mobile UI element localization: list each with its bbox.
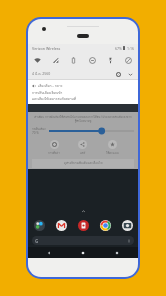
- button[interactable]: ให้คะแนน: [103, 139, 122, 157]
- staticText: 70 %: [32, 131, 39, 135]
- button[interactable]: แชร์: [75, 139, 90, 157]
- staticText: G: [35, 238, 39, 244]
- button[interactable]: ดูคำอธิบายเพิ่มเติมและเงื่อนไข: [32, 159, 134, 168]
- button[interactable]: Chrome: [98, 218, 112, 232]
- staticText: ดูคำอธิบายเพิ่มเติมและเงื่อนไข: [64, 161, 103, 166]
- button[interactable]: Play Store: [32, 218, 46, 232]
- staticText: และเสียงให้เหมาะสมกับสถานที่: [32, 96, 77, 101]
- button[interactable]: Flashlight: [104, 54, 117, 67]
- staticText: แชร์: [80, 151, 86, 156]
- staticText: การปรับเสียงเรียกเข้า: [32, 90, 63, 95]
- button[interactable]: การตั้งค่า: [45, 139, 63, 157]
- button[interactable]: Wi-Fi: [31, 54, 44, 67]
- button[interactable]: Volume slider: [49, 127, 134, 135]
- staticText: ระดับเสียง: [32, 126, 46, 131]
- button[interactable]: Mobile data: [49, 54, 62, 67]
- staticText: เสียงเรียก – กลาง: [38, 83, 63, 88]
- button[interactable]: Back: [36, 247, 62, 258]
- staticText: คำเตือน การเปิดเสียงให้ดังเกินไปอาจส่งผล…: [32, 115, 134, 123]
- button[interactable]: Drive: [76, 218, 90, 232]
- button[interactable]: Auto rotate: [122, 54, 135, 67]
- button[interactable]: G: [32, 236, 134, 245]
- button[interactable]: Do not disturb: [86, 54, 99, 67]
- button[interactable]: Gmail: [54, 218, 68, 232]
- button[interactable]: Camera: [120, 218, 134, 232]
- staticText: 1:16: [127, 46, 134, 51]
- button[interactable]: Home: [70, 247, 96, 258]
- staticText: ให้คะแนน: [106, 151, 119, 156]
- staticText: Verizon Wireless: [32, 46, 61, 51]
- button[interactable]: Expand: [126, 70, 134, 78]
- button[interactable]: Battery saver: [67, 54, 80, 67]
- staticText: 4 มี.ค. 2560: [32, 71, 51, 77]
- button[interactable]: เสียงเรียก – กลาง: [28, 80, 138, 104]
- staticText: 67%: [115, 46, 122, 51]
- button[interactable]: Settings: [114, 70, 122, 78]
- button[interactable]: Recents: [104, 247, 130, 258]
- staticText: การตั้งค่า: [48, 151, 60, 156]
